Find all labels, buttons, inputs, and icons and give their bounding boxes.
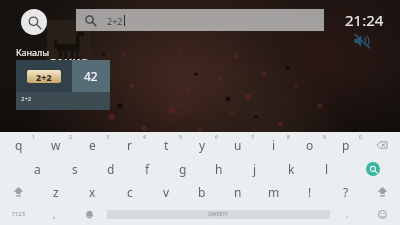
button[interactable]: k [273, 157, 309, 180]
button[interactable]: r [111, 132, 148, 157]
staticText: r [127, 137, 132, 153]
staticText: 4 [143, 134, 146, 141]
staticText: . [346, 208, 349, 220]
staticText: ! [308, 184, 312, 200]
button[interactable]: b [184, 180, 220, 203]
staticText: b [198, 184, 206, 200]
staticText: 5 [179, 134, 182, 141]
button[interactable]: p [328, 132, 364, 157]
staticText: t [164, 137, 169, 153]
button[interactable]: g [165, 157, 201, 180]
staticText: l [325, 161, 329, 177]
button[interactable]: Voice input [72, 203, 107, 225]
staticText: 0 [359, 134, 362, 141]
staticText: j [253, 161, 257, 177]
staticText: m [268, 184, 280, 200]
button[interactable]: s [56, 157, 93, 180]
staticText: d [107, 161, 115, 177]
button[interactable]: o [292, 132, 328, 157]
button[interactable]: Emoji [365, 203, 400, 225]
staticText: x [89, 184, 96, 200]
button[interactable]: f [129, 157, 165, 180]
button[interactable]: a [19, 157, 56, 180]
button[interactable]: m [256, 180, 292, 203]
staticText: v [163, 184, 170, 200]
button[interactable]: Volume muted [352, 31, 372, 51]
staticText: h [215, 161, 223, 177]
staticText: q [15, 137, 23, 153]
button[interactable]: c [111, 180, 148, 203]
staticText: Каналы [16, 46, 50, 58]
button[interactable]: e [74, 132, 111, 157]
staticText: 8 [287, 134, 290, 141]
staticText: QWERTY [208, 211, 229, 218]
staticText: p [342, 137, 350, 153]
button[interactable]: Search [21, 9, 47, 35]
button[interactable]: 2+2 [16, 60, 110, 110]
button[interactable]: t [148, 132, 184, 157]
staticText: a [34, 161, 41, 177]
button[interactable]: Search [345, 157, 400, 180]
staticText: u [234, 137, 242, 153]
button[interactable]: Space [107, 203, 330, 225]
button[interactable]: ! [292, 180, 328, 203]
button[interactable]: ? [328, 180, 364, 203]
staticText: c [127, 184, 133, 200]
staticText: 9 [323, 134, 326, 141]
staticText: k [288, 161, 295, 177]
staticText: o [306, 137, 314, 153]
button[interactable]: x [74, 180, 111, 203]
staticText: 1 [32, 134, 35, 141]
staticText: 2+2 [21, 95, 32, 103]
staticText: 2 [69, 134, 72, 141]
button[interactable]: Backspace [364, 132, 400, 157]
staticText: 2+2 [36, 71, 52, 83]
button[interactable]: Shift [364, 180, 400, 203]
staticText: n [234, 184, 242, 200]
staticText: z [53, 184, 59, 200]
staticText: g [179, 161, 187, 177]
button[interactable]: y [184, 132, 220, 157]
staticText: s [72, 161, 78, 177]
staticText: 3 [106, 134, 109, 141]
button[interactable]: n [220, 180, 256, 203]
staticText: e [89, 137, 96, 153]
button[interactable]: d [93, 157, 129, 180]
staticText: y [199, 137, 206, 153]
staticText: 21:24 [345, 10, 384, 30]
button[interactable]: h [201, 157, 237, 180]
button[interactable]: i [256, 132, 292, 157]
button[interactable]: j [237, 157, 273, 180]
button[interactable]: l [309, 157, 345, 180]
staticText: w [51, 137, 61, 153]
staticText: 42 [84, 68, 98, 84]
button[interactable]: v [148, 180, 184, 203]
staticText: , [53, 208, 56, 220]
button[interactable]: q [0, 132, 37, 157]
button[interactable]: Shift [0, 180, 37, 203]
staticText: РАНЧО [50, 55, 89, 70]
staticText: 2+2 [107, 15, 123, 27]
button[interactable]: Symbols [0, 203, 37, 225]
staticText: ? [343, 184, 349, 200]
button[interactable]: 2+2 [76, 9, 324, 31]
button[interactable]: w [37, 132, 74, 157]
staticText: 7 [251, 134, 254, 141]
staticText: ?123 [12, 210, 25, 218]
staticText: 6 [215, 134, 218, 141]
staticText: i [272, 137, 276, 153]
staticText: f [145, 161, 150, 177]
button[interactable]: , [37, 203, 72, 225]
button[interactable]: z [37, 180, 74, 203]
button[interactable]: u [220, 132, 256, 157]
